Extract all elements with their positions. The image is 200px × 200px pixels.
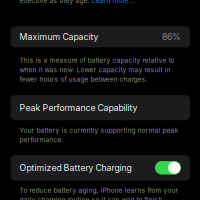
staticText: effective as they age.: [19, 0, 91, 5]
staticText: This is a measure of battery capacity re…: [19, 56, 174, 64]
staticText: Peak Performance Capability: [19, 102, 137, 113]
staticText: fewer hours of usage between charges.: [19, 75, 147, 83]
staticText: 86%: [162, 32, 181, 42]
button[interactable]: Maximum Capacity: [10, 26, 190, 47]
staticText: Your battery is currently supporting nor…: [19, 126, 178, 134]
button[interactable]: Optimized Battery Charging: [10, 155, 190, 180]
staticText: To reduce battery aging, iPhone learns f…: [19, 186, 178, 194]
staticText: Optimized Battery Charging: [19, 162, 131, 173]
staticText: Learn more...: [91, 0, 134, 5]
staticText: Maximum Capacity: [19, 32, 98, 42]
staticText: when it was new. Lower capacity may resu…: [19, 66, 170, 74]
staticText: daily charging routine so it can wait to…: [19, 196, 162, 200]
staticText: performance.: [19, 136, 63, 144]
button[interactable]: Peak Performance Capability: [10, 95, 190, 120]
